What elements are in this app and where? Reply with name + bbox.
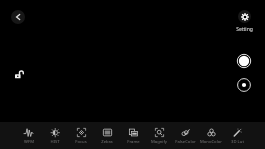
button[interactable]: Frame [120,122,146,149]
button[interactable]: Magnify [146,122,172,149]
button[interactable]: Take photo [237,54,251,68]
staticText: HIST [50,139,60,145]
staticText: Zebra [101,139,113,145]
button[interactable]: WFM [15,122,42,149]
button[interactable]: Unlock exposure [13,68,25,80]
staticText: MonoColor [200,139,222,145]
staticText: Frame [127,139,140,145]
button[interactable]: Zebra [94,122,120,149]
button[interactable]: HIST [42,122,68,149]
button[interactable]: MonoColor [198,122,224,149]
staticText: 3D Lut [231,139,244,145]
staticText: FalseColor [175,139,196,145]
button[interactable]: Focus [68,122,94,149]
button[interactable]: Setting [234,9,255,32]
button[interactable]: Back [11,10,25,24]
staticText: Setting [236,26,253,33]
staticText: Focus [75,139,87,145]
staticText: Magnify [151,139,167,145]
button[interactable]: 3D Lut [224,122,250,149]
button[interactable]: Record video [237,78,251,92]
staticText: WFM [24,139,34,145]
button[interactable]: FalseColor [172,122,198,149]
